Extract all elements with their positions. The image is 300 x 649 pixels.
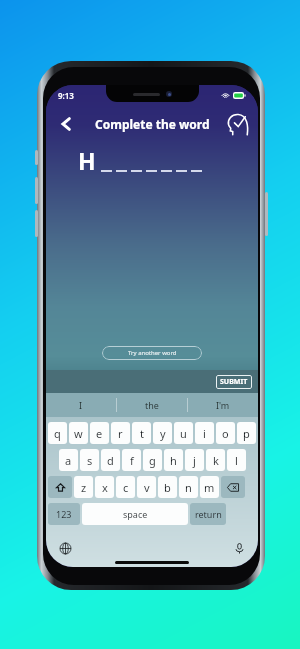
button[interactable]: return (190, 503, 226, 525)
staticText: p (243, 426, 250, 441)
staticText: z (81, 480, 87, 495)
staticText: h (170, 453, 177, 468)
button[interactable]: y (153, 422, 172, 444)
staticText: e (96, 426, 103, 441)
button[interactable]: Back (53, 111, 79, 137)
button[interactable]: j (185, 449, 204, 471)
button[interactable]: b (158, 476, 177, 498)
button[interactable]: u (174, 422, 193, 444)
button[interactable]: t (132, 422, 151, 444)
button[interactable]: q (48, 422, 67, 444)
button[interactable]: o (216, 422, 235, 444)
staticText: n (185, 480, 192, 495)
staticText: 9:13 (58, 90, 74, 101)
staticText: r (118, 426, 123, 441)
button[interactable]: d (101, 449, 120, 471)
button[interactable]: Shift (48, 476, 72, 498)
button[interactable]: g (143, 449, 162, 471)
button[interactable]: 123 (48, 503, 80, 525)
staticText: 123 (56, 508, 72, 520)
button[interactable]: l (227, 449, 246, 471)
staticText: Try another word (128, 349, 177, 357)
staticText: c (123, 480, 129, 495)
staticText: v (144, 480, 150, 495)
staticText: return (195, 508, 222, 520)
staticText: t (140, 426, 144, 441)
staticText: j (193, 453, 196, 468)
button[interactable]: n (179, 476, 198, 498)
button[interactable]: SUBMIT (220, 377, 248, 387)
staticText: w (74, 426, 83, 441)
button[interactable]: c (116, 476, 135, 498)
staticText: f (130, 453, 134, 468)
button[interactable]: s (80, 449, 99, 471)
button[interactable]: h (164, 449, 183, 471)
button[interactable]: z (74, 476, 93, 498)
button[interactable]: r (111, 422, 130, 444)
staticText: a (65, 453, 72, 468)
staticText: Complete the word (95, 116, 210, 132)
staticText: I (79, 399, 83, 411)
button[interactable]: space (82, 503, 188, 525)
button[interactable]: Change keyboard (57, 540, 73, 556)
button[interactable]: v (137, 476, 156, 498)
staticText: d (107, 453, 114, 468)
staticText: g (149, 453, 156, 468)
staticText: the (145, 399, 159, 411)
staticText: i (203, 426, 206, 441)
button[interactable]: k (206, 449, 225, 471)
staticText: o (222, 426, 229, 441)
button[interactable]: Try another word (102, 346, 202, 360)
staticText: m (204, 480, 215, 495)
button[interactable]: f (122, 449, 141, 471)
staticText: s (87, 453, 93, 468)
button[interactable]: the (117, 393, 187, 417)
button[interactable]: w (69, 422, 88, 444)
staticText: y (160, 426, 166, 441)
staticText: k (213, 453, 219, 468)
button[interactable]: Backspace (221, 476, 245, 498)
staticText: b (164, 480, 171, 495)
button[interactable]: I'm (188, 393, 258, 417)
button[interactable]: i (195, 422, 214, 444)
button[interactable]: p (237, 422, 256, 444)
button[interactable]: I (46, 393, 116, 417)
button[interactable]: m (200, 476, 219, 498)
button[interactable]: x (95, 476, 114, 498)
staticText: I'm (216, 399, 230, 411)
staticText: space (123, 508, 148, 520)
staticText: x (102, 480, 108, 495)
staticText: u (180, 426, 187, 441)
staticText: H (78, 145, 96, 176)
button[interactable]: Voice input (231, 540, 247, 556)
button[interactable]: Progress (225, 111, 251, 137)
button[interactable]: e (90, 422, 109, 444)
staticText: l (235, 453, 238, 468)
button[interactable]: a (59, 449, 78, 471)
staticText: SUBMIT (220, 377, 248, 387)
staticText: q (54, 426, 61, 441)
